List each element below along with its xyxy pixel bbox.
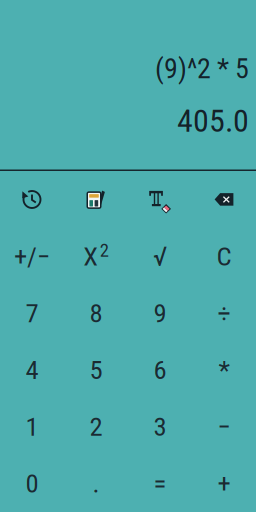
button[interactable]: 3 xyxy=(128,398,192,455)
staticText: 2 xyxy=(89,411,102,442)
button[interactable]: . xyxy=(64,455,128,512)
button[interactable]: 5 xyxy=(64,341,128,398)
staticText: . xyxy=(92,468,99,499)
button[interactable]: Clear xyxy=(128,171,192,228)
button[interactable]: C xyxy=(192,228,256,285)
button[interactable]: ÷ xyxy=(192,285,256,342)
staticText: 1 xyxy=(25,411,38,442)
button[interactable]: New calculation xyxy=(64,171,128,228)
button[interactable]: 2 xyxy=(64,398,128,455)
staticText: 8 xyxy=(89,297,102,329)
button[interactable]: X xyxy=(64,228,128,285)
button[interactable]: + xyxy=(192,455,256,512)
staticText: ÷ xyxy=(217,297,230,329)
staticText: C xyxy=(216,241,231,272)
staticText: X xyxy=(83,241,98,272)
button[interactable]: √ xyxy=(128,228,192,285)
button[interactable]: * xyxy=(192,341,256,398)
button[interactable]: 7 xyxy=(0,285,64,342)
staticText: 5 xyxy=(89,354,102,385)
button[interactable]: 1 xyxy=(0,398,64,455)
staticText: * xyxy=(218,354,229,385)
staticText: 2 xyxy=(100,239,109,261)
button[interactable]: 9 xyxy=(128,285,192,342)
staticText: + xyxy=(217,468,230,499)
staticText: 3 xyxy=(153,411,166,442)
staticText: √ xyxy=(153,241,167,272)
button[interactable]: 4 xyxy=(0,341,64,398)
button[interactable]: Delete xyxy=(192,171,256,228)
staticText: − xyxy=(217,411,230,442)
button[interactable]: = xyxy=(128,455,192,512)
button[interactable]: 6 xyxy=(128,341,192,398)
button[interactable]: History xyxy=(0,171,64,228)
staticText: 4 xyxy=(25,354,38,385)
staticText: 0 xyxy=(25,468,38,499)
staticText: = xyxy=(153,468,166,499)
staticText: (9)^2 * 5 xyxy=(155,52,249,85)
button[interactable]: 0 xyxy=(0,455,64,512)
staticText: 7 xyxy=(25,297,38,329)
button[interactable]: − xyxy=(192,398,256,455)
button[interactable]: 8 xyxy=(64,285,128,342)
staticText: 9 xyxy=(153,297,166,329)
button[interactable]: +/− xyxy=(0,228,64,285)
staticText: 405.0 xyxy=(177,102,249,139)
staticText: +/− xyxy=(14,241,50,272)
staticText: 6 xyxy=(153,354,166,385)
